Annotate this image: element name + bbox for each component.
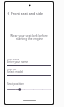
staticText: Your name	[7, 57, 20, 60]
button[interactable]: Your car	[7, 67, 51, 76]
staticText: Wear your seat belt before	[10, 34, 48, 38]
button[interactable]: Back	[6, 11, 11, 16]
button[interactable]: Seat position slider	[7, 87, 51, 92]
staticText: Enter your name	[7, 60, 29, 64]
staticText: Seat position	[7, 82, 25, 86]
staticText: starting the engine	[16, 37, 43, 41]
staticText: Select model	[7, 70, 24, 74]
staticText: Front seat and side	[11, 11, 43, 16]
staticText: Your car	[7, 67, 17, 70]
button[interactable]: Your name	[7, 57, 51, 66]
